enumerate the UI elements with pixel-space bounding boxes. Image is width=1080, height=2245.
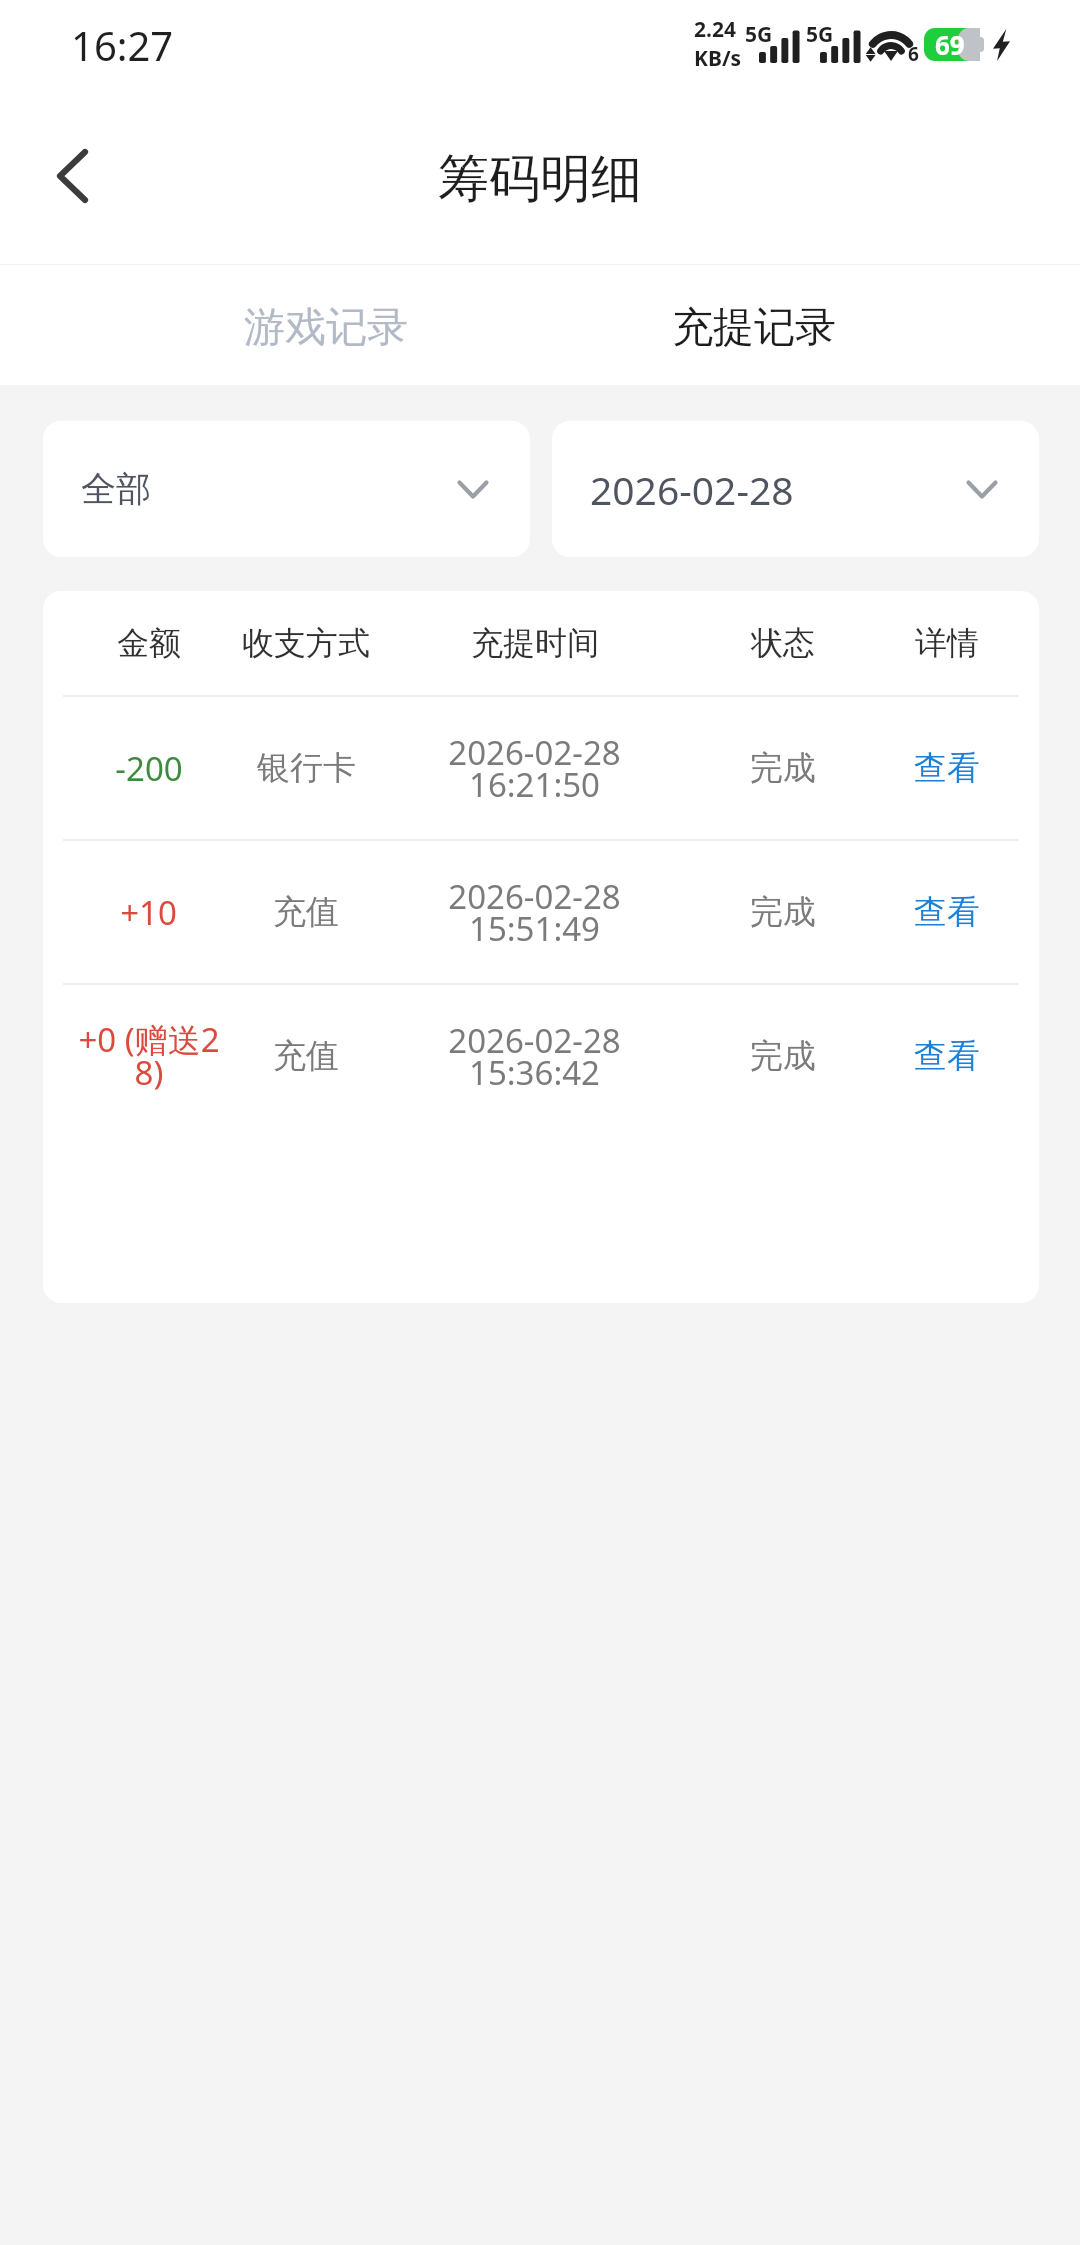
- button[interactable]: -200: [43, 697, 1039, 839]
- staticText: +10: [120, 890, 177, 935]
- button[interactable]: 查看: [855, 985, 1039, 1127]
- staticText: 完成: [750, 747, 816, 789]
- staticText: 状态: [751, 623, 815, 663]
- button[interactable]: 2026-02-28: [552, 421, 1039, 557]
- button[interactable]: 游戏记录: [220, 265, 432, 385]
- staticText: 全部: [81, 467, 151, 511]
- staticText: 2026-02-28 15:36:42: [448, 1018, 621, 1095]
- button[interactable]: 全部: [43, 421, 530, 557]
- button[interactable]: +0 (赠送2 8): [43, 985, 1039, 1127]
- button[interactable]: Back: [30, 134, 114, 218]
- staticText: 充值: [273, 891, 339, 933]
- staticText: 5G: [806, 20, 834, 49]
- staticText: 2026-02-28: [590, 463, 794, 516]
- staticText: 查看: [914, 891, 980, 933]
- staticText: 详情: [915, 623, 979, 663]
- staticText: 充提时间: [471, 623, 599, 663]
- staticText: 金额: [117, 623, 181, 663]
- button[interactable]: 查看: [855, 697, 1039, 839]
- staticText: 充提记录: [672, 302, 836, 354]
- staticText: 银行卡: [257, 747, 356, 789]
- staticText: 查看: [914, 1035, 980, 1077]
- staticText: 16:27: [71, 18, 174, 72]
- staticText: +0 (赠送2 8): [78, 1017, 220, 1095]
- staticText: 游戏记录: [244, 302, 408, 354]
- staticText: -200: [115, 746, 183, 791]
- staticText: KB/s: [694, 44, 742, 73]
- staticText: 5G: [745, 20, 773, 49]
- staticText: 2026-02-28 16:21:50: [448, 730, 621, 807]
- staticText: 充值: [273, 1035, 339, 1077]
- staticText: 收支方式: [242, 623, 370, 663]
- staticText: 完成: [750, 891, 816, 933]
- staticText: 完成: [750, 1035, 816, 1077]
- staticText: 6: [908, 41, 919, 67]
- staticText: 69: [935, 27, 965, 60]
- staticText: 2026-02-28 15:51:49: [448, 874, 621, 951]
- button[interactable]: 查看: [855, 841, 1039, 983]
- staticText: 筹码明细: [438, 147, 642, 211]
- staticText: 2.24: [694, 15, 736, 44]
- button[interactable]: +10: [43, 841, 1039, 983]
- button[interactable]: 充提记录: [648, 265, 860, 385]
- staticText: 查看: [914, 747, 980, 789]
